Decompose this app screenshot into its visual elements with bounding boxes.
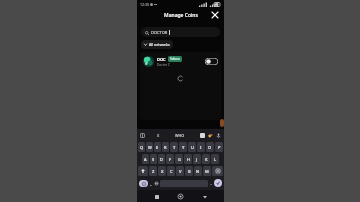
button[interactable]: H xyxy=(184,154,192,164)
button[interactable]: W xyxy=(146,142,153,152)
button[interactable]: L xyxy=(211,154,219,164)
staticText: G xyxy=(178,157,181,162)
button[interactable]: E xyxy=(154,142,161,152)
button[interactable]: Home xyxy=(176,192,185,201)
staticText: H xyxy=(187,157,190,162)
button[interactable]: Keyboard menu xyxy=(140,133,145,138)
button[interactable]: X xyxy=(157,133,160,138)
staticText: C xyxy=(170,169,173,174)
button[interactable]: Stickers xyxy=(208,133,213,138)
button[interactable]: D xyxy=(158,154,165,164)
staticText: Manage Coins xyxy=(164,12,198,19)
button[interactable]: U xyxy=(188,142,196,152)
button[interactable]: , xyxy=(149,181,153,186)
staticText: DOCTOR xyxy=(151,30,168,35)
staticText: Doctor C xyxy=(157,63,171,67)
button[interactable]: P xyxy=(215,142,223,152)
button[interactable]: F xyxy=(166,154,174,164)
button[interactable]: X xyxy=(158,166,166,176)
button[interactable]: Recents xyxy=(152,192,161,201)
button[interactable]: G xyxy=(175,154,183,164)
staticText: V xyxy=(179,169,182,174)
staticText: X xyxy=(161,169,164,174)
button[interactable]: Close xyxy=(210,10,220,20)
staticText: I xyxy=(200,145,202,150)
button[interactable]: Z xyxy=(149,166,157,176)
button[interactable]: Emoji xyxy=(139,180,148,187)
button[interactable]: T xyxy=(170,142,178,152)
staticText: P xyxy=(218,145,221,150)
button[interactable]: I xyxy=(197,142,205,152)
staticText: Solana xyxy=(170,57,180,61)
staticText: A xyxy=(144,157,147,162)
staticText: Z xyxy=(152,169,155,174)
button[interactable]: Q xyxy=(138,142,145,152)
button[interactable]: . xyxy=(209,181,213,186)
staticText: All networks xyxy=(149,42,170,47)
staticText: DOC xyxy=(157,57,166,62)
button[interactable]: N xyxy=(194,166,202,176)
button[interactable]: Back xyxy=(200,192,209,201)
staticText: L xyxy=(214,157,217,162)
staticText: K xyxy=(205,157,208,162)
button[interactable]: R xyxy=(162,142,169,152)
button[interactable]: Y xyxy=(179,142,187,152)
staticText: B xyxy=(188,169,191,174)
staticText: Q xyxy=(140,145,144,150)
button[interactable]: A xyxy=(142,154,149,164)
button[interactable]: WHO xyxy=(175,133,185,138)
staticText: M xyxy=(205,169,209,174)
button[interactable]: Enter xyxy=(214,179,222,187)
staticText: W xyxy=(148,145,152,150)
button[interactable]: Clipboard xyxy=(200,133,205,138)
button[interactable]: O xyxy=(206,142,214,152)
button[interactable]: Voice input xyxy=(216,133,221,138)
button[interactable]: J xyxy=(193,154,201,164)
staticText: N xyxy=(196,169,200,174)
button[interactable]: DOCTOR xyxy=(141,27,220,37)
staticText: Y xyxy=(182,145,185,150)
button[interactable]: Language xyxy=(154,181,159,186)
button[interactable]: Toggle coin xyxy=(205,58,218,65)
button[interactable]: Shift xyxy=(138,166,148,176)
button[interactable]: All networks xyxy=(141,40,173,49)
button[interactable]: S xyxy=(150,154,157,164)
staticText: E xyxy=(156,145,159,150)
staticText: S xyxy=(152,157,155,162)
staticText: D xyxy=(160,157,163,162)
staticText: O xyxy=(208,145,212,150)
button[interactable]: K xyxy=(202,154,210,164)
button[interactable]: B xyxy=(185,166,193,176)
staticText: U xyxy=(191,145,194,150)
button[interactable]: M xyxy=(203,166,211,176)
button[interactable]: C xyxy=(167,166,175,176)
staticText: F xyxy=(169,157,172,162)
staticText: T xyxy=(173,145,176,150)
button[interactable]: DOC xyxy=(140,52,221,70)
staticText: R xyxy=(164,145,167,150)
button[interactable]: V xyxy=(176,166,184,176)
staticText: 12:30 xyxy=(140,2,149,7)
button[interactable]: Backspace xyxy=(212,166,223,176)
staticText: J xyxy=(196,157,198,162)
